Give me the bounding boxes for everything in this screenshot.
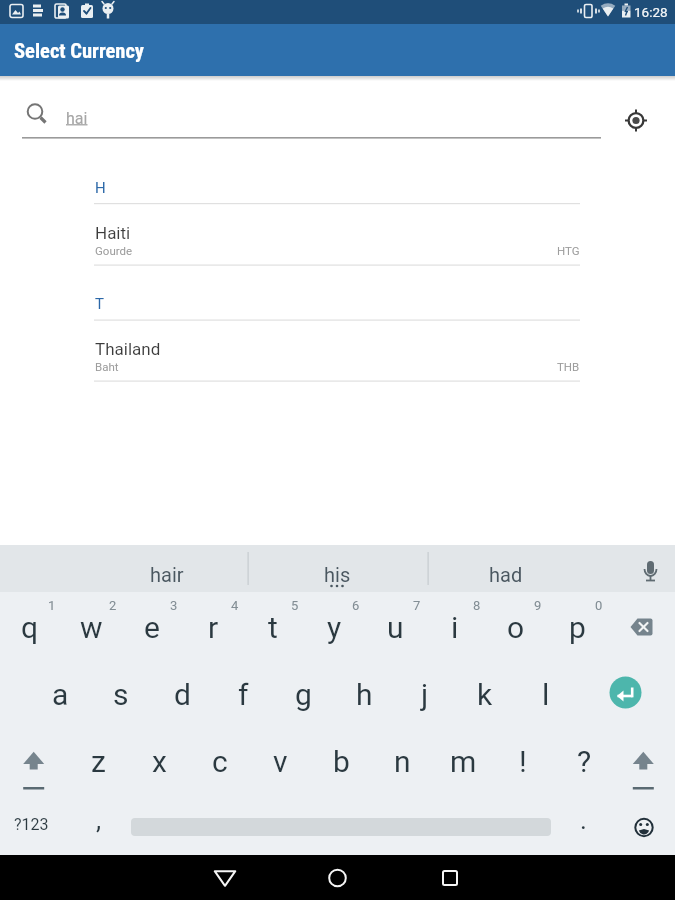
button[interactable] (420, 855, 480, 900)
staticText: hair (150, 563, 184, 586)
button[interactable] (617, 795, 672, 853)
staticText: T (95, 295, 104, 313)
staticText: o (507, 610, 525, 645)
staticText: x (152, 744, 167, 779)
button[interactable]: , (74, 792, 124, 848)
staticText: n (394, 744, 411, 779)
button[interactable]: e (122, 594, 182, 660)
button[interactable]: i (425, 594, 485, 660)
button[interactable]: c (190, 728, 250, 795)
button[interactable] (3, 725, 65, 792)
button[interactable]: x (129, 728, 189, 795)
staticText: h (356, 677, 373, 712)
button[interactable]: a (30, 661, 90, 727)
staticText: a (52, 677, 69, 712)
staticText: u (387, 610, 404, 645)
staticText: HTG (557, 244, 580, 257)
staticText: his (324, 563, 351, 586)
button[interactable] (307, 855, 367, 900)
button[interactable]: v (250, 728, 310, 795)
staticText: s (113, 677, 129, 712)
staticText: had (489, 563, 523, 586)
button[interactable]: hair (92, 552, 242, 596)
staticText: hai (66, 109, 88, 128)
staticText: q (21, 610, 39, 645)
staticText: Thailand (95, 339, 161, 359)
button[interactable]: f (213, 661, 273, 727)
button[interactable]: n (372, 728, 432, 795)
button[interactable]: ? (554, 728, 614, 795)
staticText: ! (519, 744, 527, 779)
staticText: m (450, 744, 477, 779)
staticText: Select Currency (14, 39, 145, 63)
button[interactable]: b (311, 728, 371, 795)
staticText: 8 (473, 598, 481, 613)
staticText: k (477, 677, 493, 712)
button[interactable]: ! (493, 728, 553, 795)
staticText: g (295, 677, 312, 712)
staticText: b (333, 744, 350, 779)
staticText: H (95, 179, 106, 197)
button[interactable] (610, 592, 675, 658)
button[interactable]: y (304, 594, 364, 660)
staticText: d (174, 677, 191, 712)
button[interactable]: t (243, 594, 303, 660)
staticText: 5 (291, 598, 299, 613)
staticText: e (144, 610, 160, 645)
button[interactable]: had (431, 552, 581, 596)
staticText: THB (557, 360, 580, 373)
staticText: f (238, 677, 249, 712)
button[interactable]: . (558, 792, 608, 848)
staticText: i (451, 610, 459, 645)
button[interactable] (614, 99, 658, 143)
button[interactable]: l (516, 661, 576, 727)
staticText: r (208, 610, 219, 645)
button[interactable] (610, 725, 672, 792)
button[interactable]: his (262, 552, 412, 596)
button[interactable] (630, 548, 672, 590)
button[interactable] (80, 206, 595, 264)
button[interactable]: h (334, 661, 394, 727)
staticText: 4 (231, 598, 239, 613)
staticText: t (268, 610, 278, 645)
button[interactable]: w (61, 594, 121, 660)
button[interactable]: r (183, 594, 243, 660)
button[interactable] (195, 855, 255, 900)
staticText: ?123 (14, 815, 49, 834)
staticText: Gourde (95, 244, 133, 257)
button[interactable] (605, 672, 647, 714)
button[interactable]: j (395, 661, 455, 727)
button[interactable]: z (68, 728, 128, 795)
button[interactable]: s (91, 661, 151, 727)
staticText: z (91, 744, 106, 779)
staticText: 6 (352, 598, 360, 613)
button[interactable]: k (455, 661, 515, 727)
button[interactable]: hai (22, 96, 602, 140)
staticText: p (569, 610, 586, 645)
staticText: y (327, 610, 342, 645)
staticText: 1 (48, 598, 56, 613)
staticText: Baht (95, 360, 119, 373)
button[interactable] (80, 322, 595, 380)
staticText: , (96, 805, 102, 835)
staticText: 16:28 (634, 4, 668, 20)
staticText: 9 (534, 598, 542, 613)
staticText: v (273, 744, 288, 779)
button[interactable]: d (152, 661, 212, 727)
staticText: l (542, 677, 550, 712)
button[interactable]: ?123 (2, 795, 60, 853)
staticText: w (80, 610, 103, 645)
button[interactable]: m (433, 728, 493, 795)
staticText: 7 (413, 598, 421, 613)
staticText: c (212, 744, 228, 779)
staticText: ? (577, 744, 592, 779)
staticText: . (580, 805, 587, 835)
staticText: 2 (109, 598, 117, 613)
staticText: j (421, 677, 429, 712)
button[interactable]: p (547, 594, 607, 660)
button[interactable]: q (0, 594, 60, 660)
button[interactable]: o (486, 594, 546, 660)
button[interactable]: u (365, 594, 425, 660)
button[interactable]: g (273, 661, 333, 727)
